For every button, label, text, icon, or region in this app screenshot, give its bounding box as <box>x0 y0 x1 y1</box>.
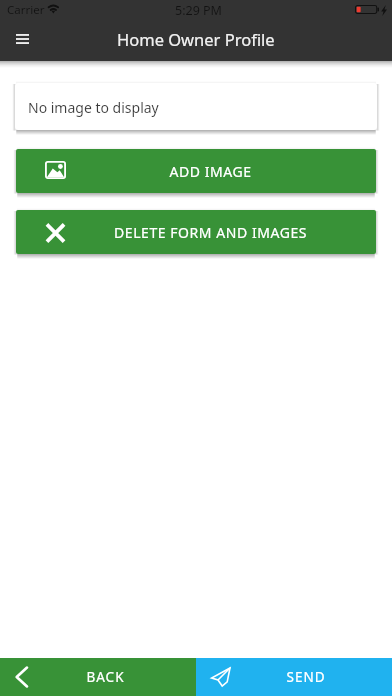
button[interactable]: SEND <box>196 658 392 696</box>
staticText: Home Owner Profile <box>117 28 275 50</box>
staticText: 5:29 PM <box>175 2 222 19</box>
button[interactable]: Delete form and images <box>16 210 376 254</box>
button[interactable]: BACK <box>0 658 196 696</box>
button[interactable]: Menu <box>6 23 38 55</box>
button[interactable]: Add image <box>16 149 376 193</box>
staticText: No image to display <box>28 98 159 117</box>
staticText: ADD IMAGE <box>45 162 376 181</box>
staticText: BACK <box>15 668 196 686</box>
staticText: Carrier <box>7 2 45 18</box>
staticText: DELETE FORM AND IMAGES <box>45 223 376 242</box>
staticText: SEND <box>220 668 392 686</box>
